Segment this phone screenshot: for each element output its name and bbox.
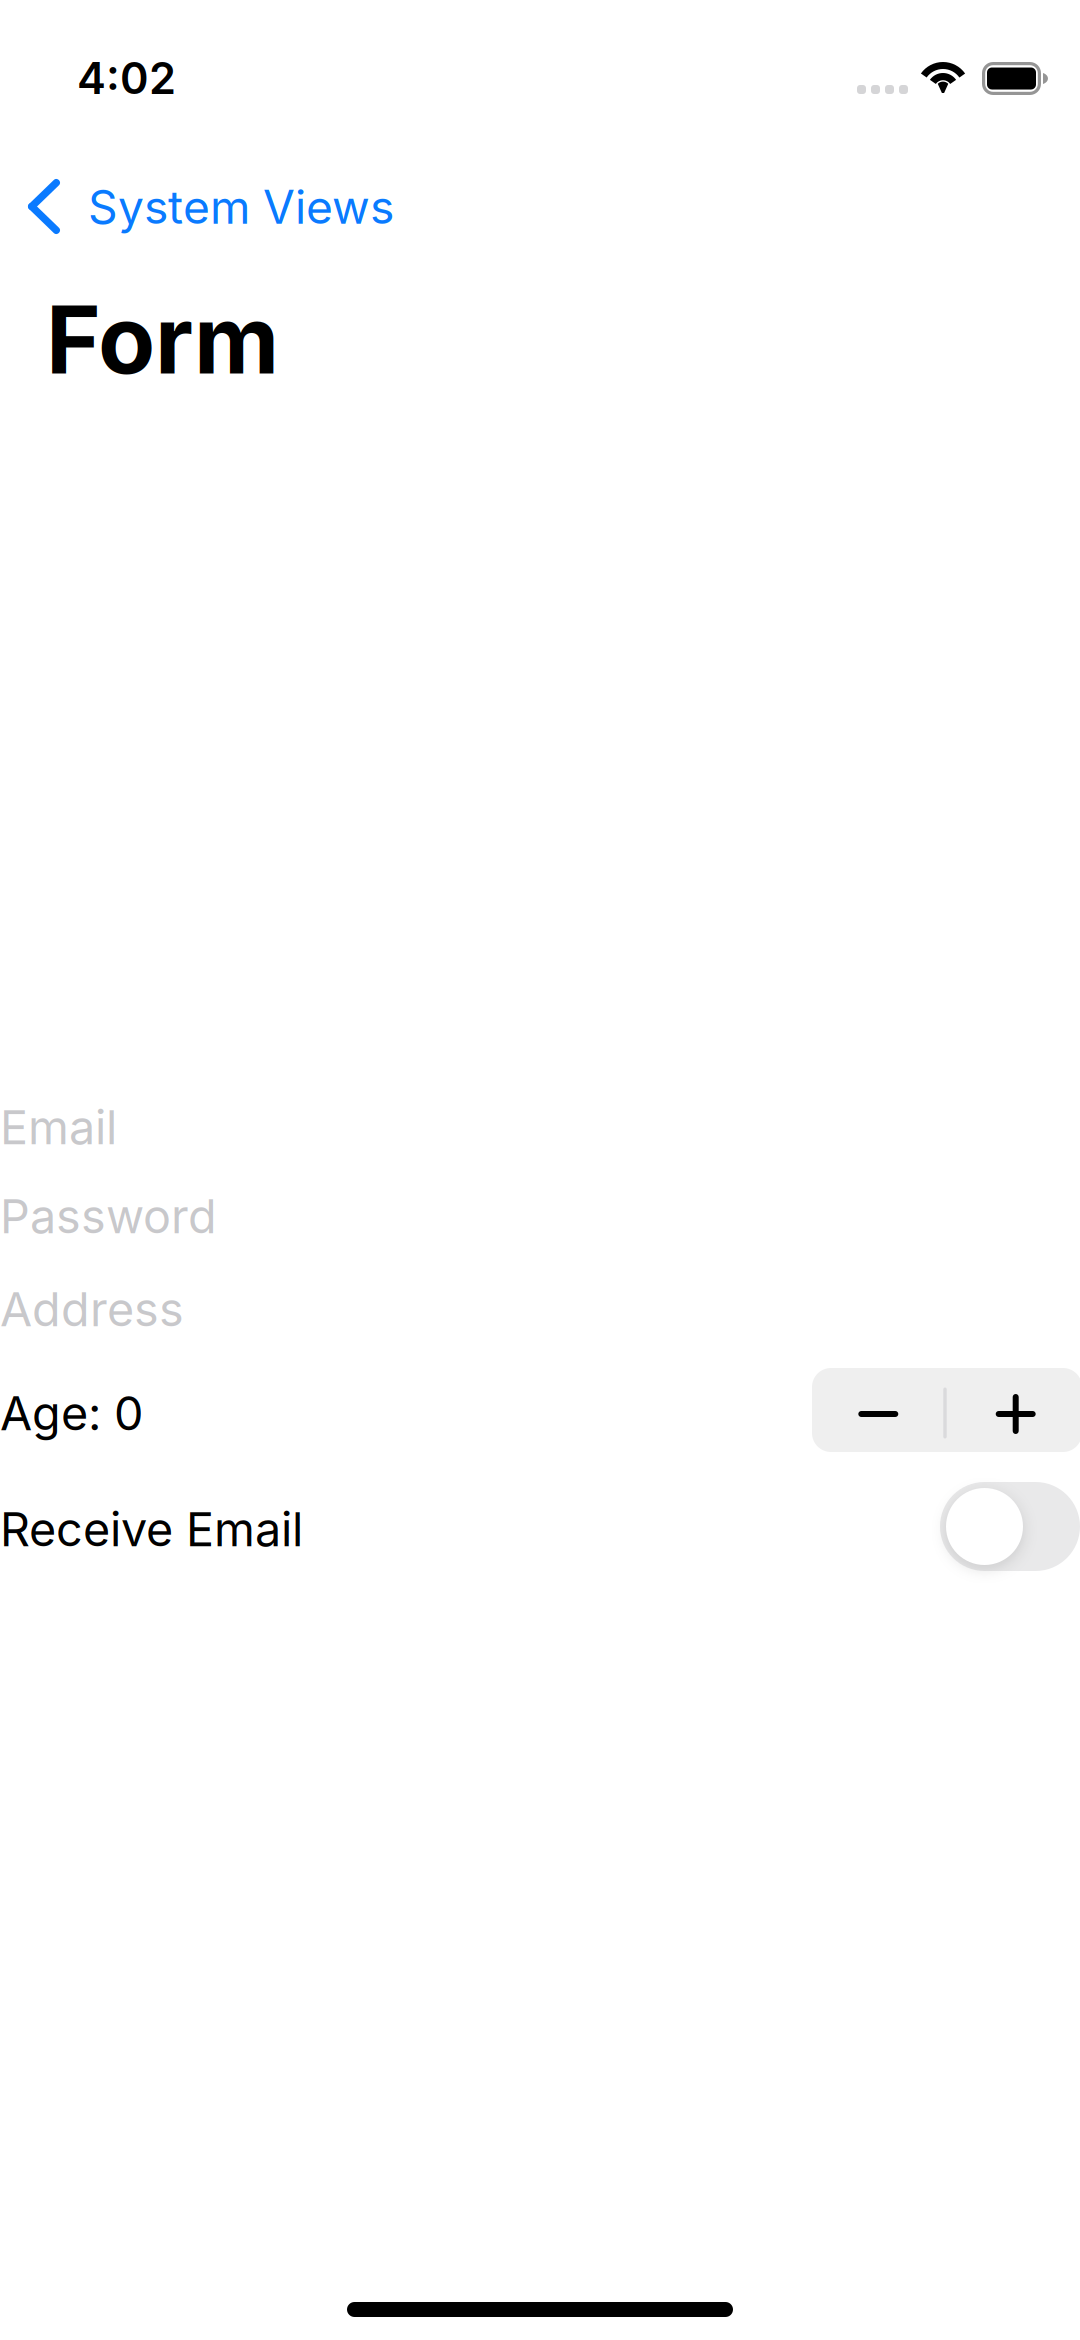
staticText: Receive Email: [0, 1501, 303, 1557]
button[interactable]: Increase age: [949, 1368, 1080, 1452]
staticText: Email: [0, 1099, 117, 1155]
button[interactable]: Address: [0, 1281, 1080, 1373]
staticText: Form: [46, 283, 279, 396]
staticText: Address: [0, 1281, 184, 1337]
staticText: 4:02: [77, 52, 176, 104]
button[interactable]: Off: [940, 1482, 1080, 1571]
button[interactable]: Password: [0, 1188, 1080, 1280]
staticText: Age: 0: [0, 1385, 143, 1441]
staticText: Password: [0, 1188, 217, 1244]
button[interactable]: Decrease age: [811, 1368, 945, 1452]
staticText: System Views: [88, 179, 394, 235]
button[interactable]: Email: [0, 1099, 1080, 1191]
button[interactable]: System Views: [0, 152, 420, 262]
